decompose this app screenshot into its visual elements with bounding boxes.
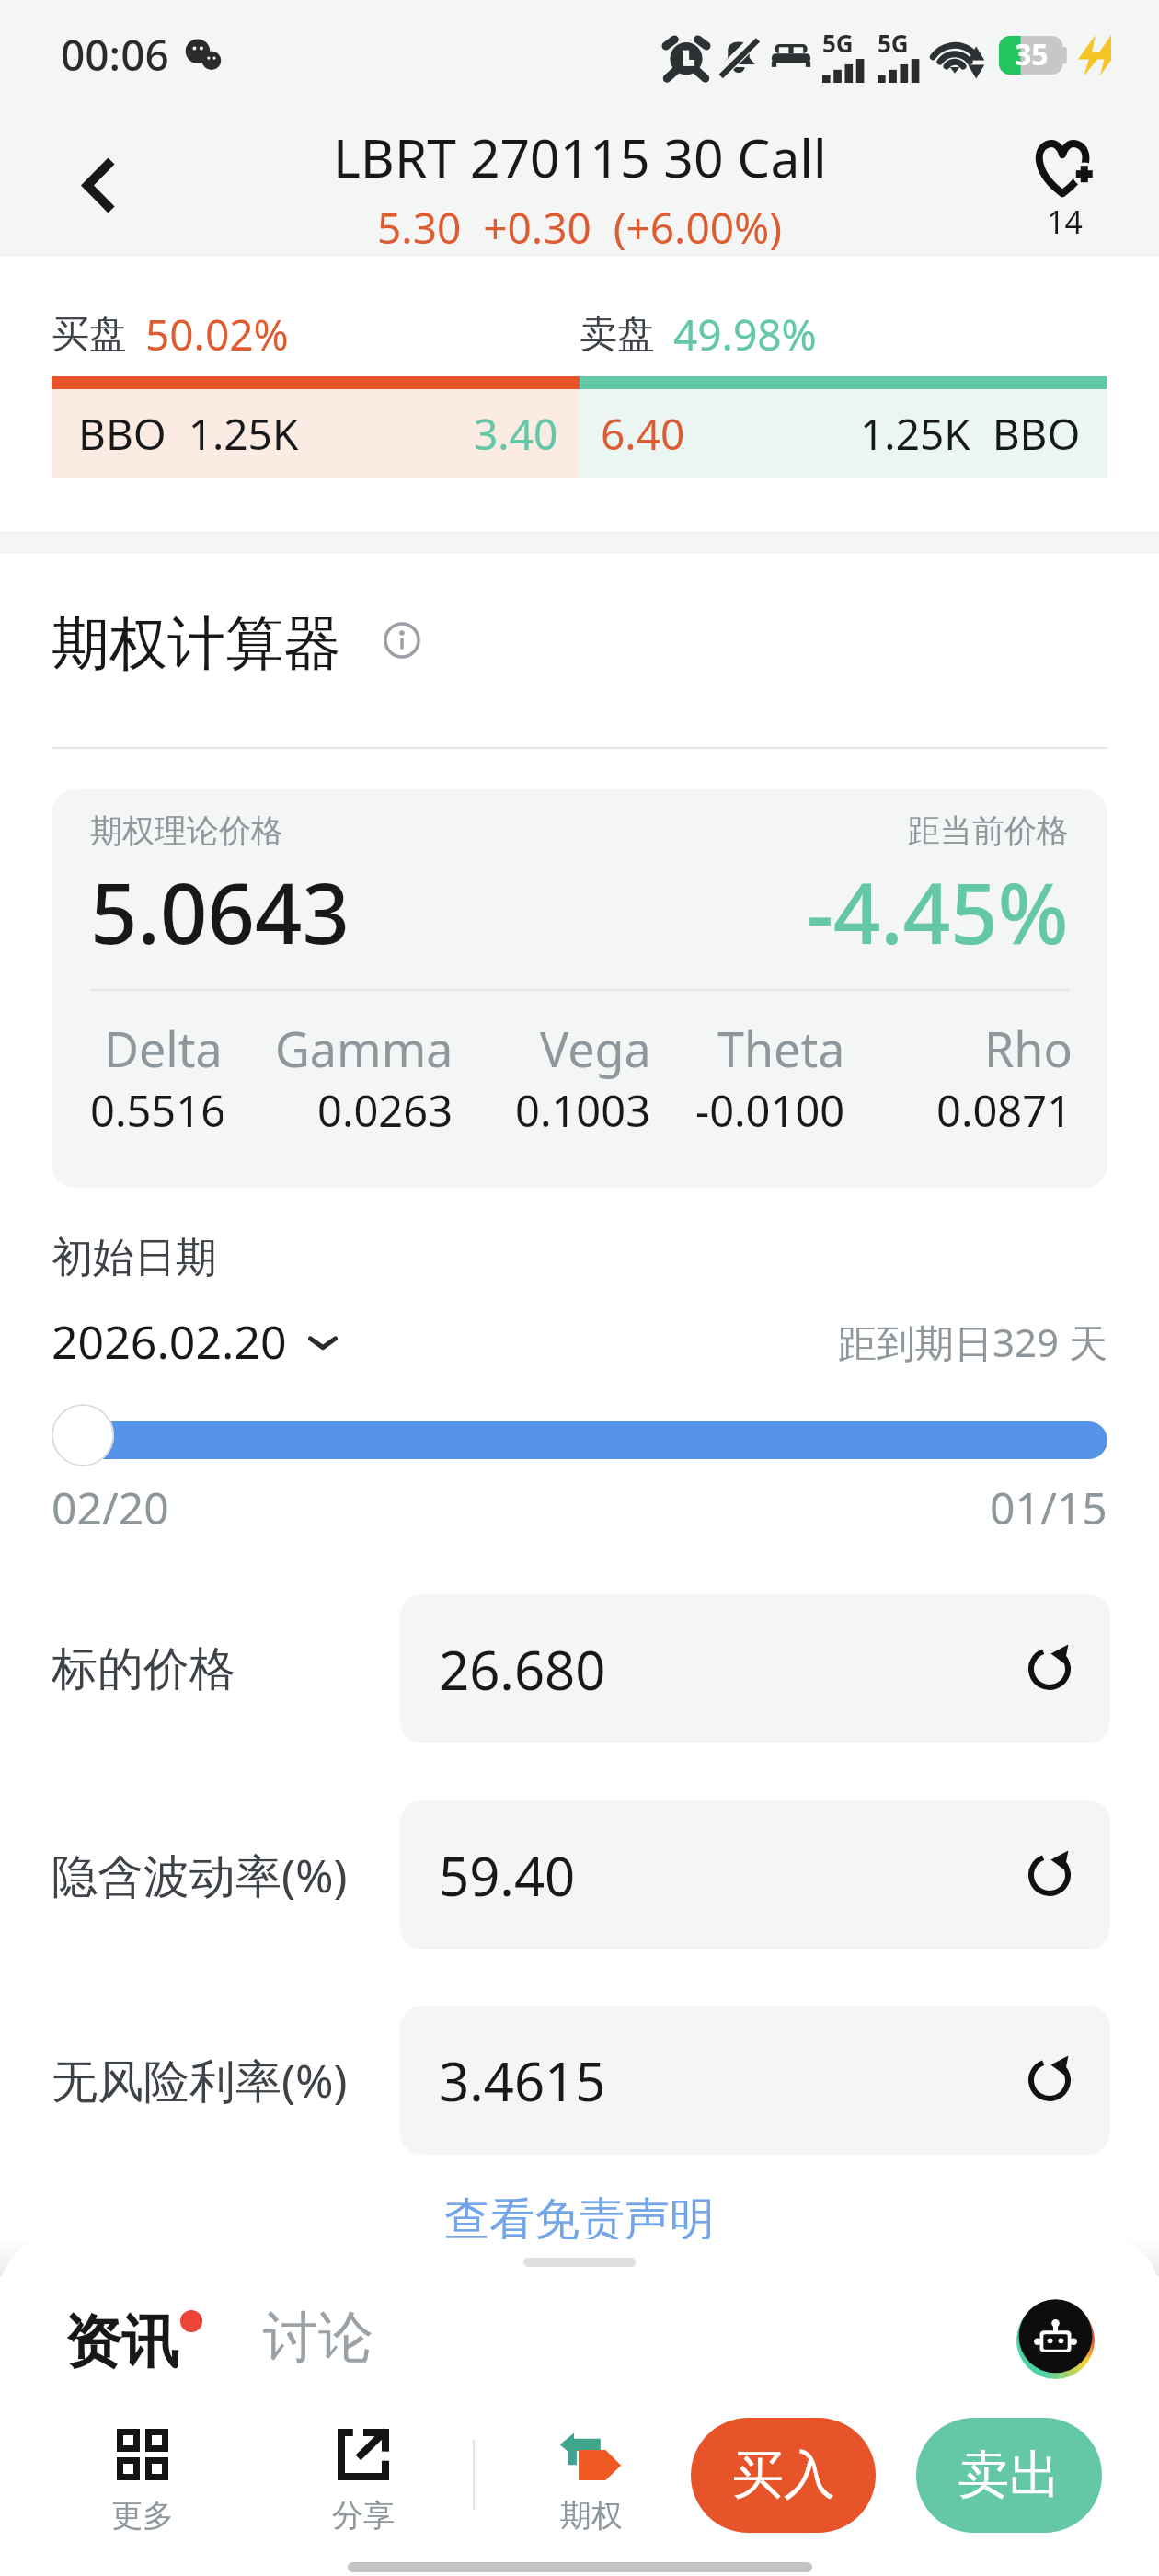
staticText: 买盘 — [52, 311, 127, 359]
staticText: 50.02% — [145, 305, 289, 363]
staticText: -4.45% — [807, 856, 1069, 969]
staticText: BBO 1.25K — [78, 405, 299, 463]
staticText: 0.1003 — [515, 1081, 651, 1140]
staticText: 0.0263 — [317, 1081, 453, 1140]
staticText: 5G — [822, 27, 854, 59]
staticText: 讨论 — [263, 2303, 373, 2373]
staticText: 26.680 — [439, 1633, 606, 1706]
staticText: 卖盘 — [579, 311, 655, 359]
button[interactable]: Add to watchlist — [1004, 140, 1125, 243]
staticText: 隐含波动率(%) — [52, 1844, 400, 1906]
staticText: 1.25K BBO — [860, 405, 1081, 463]
button[interactable]: Reset value — [1016, 2047, 1083, 2113]
staticText: 买入 — [732, 2443, 835, 2508]
button[interactable]: 期权 — [552, 2429, 631, 2536]
staticText: 5.30 +0.30 (+6.00%) — [377, 199, 783, 257]
staticText: 0.0871 — [936, 1081, 1073, 1140]
button[interactable]: 买入 — [691, 2418, 876, 2533]
button[interactable]: 更多 — [103, 2429, 182, 2536]
button[interactable]: 59.40 — [400, 1800, 1110, 1949]
staticText: 35 — [1015, 34, 1049, 75]
staticText: 5.0643 — [90, 856, 350, 969]
staticText: 3.4615 — [439, 2044, 606, 2117]
staticText: Gamma — [275, 1016, 453, 1081]
staticText: 3.40 — [474, 405, 558, 463]
staticText: 14 — [1047, 201, 1083, 243]
staticText: 无风险利率(%) — [52, 2049, 400, 2111]
staticText: LBRT 270115 30 Call — [333, 121, 827, 193]
button[interactable]: Reset value — [1016, 1842, 1083, 1908]
button[interactable]: 期权计算器 — [52, 607, 420, 680]
staticText: 分享 — [332, 2496, 395, 2536]
staticText: 2026.02.20 — [52, 1310, 287, 1373]
staticText: 距到期日329 天 — [838, 1316, 1107, 1368]
staticText: 期权 — [560, 2496, 623, 2536]
button[interactable]: AI assistant — [1016, 2301, 1095, 2379]
staticText: 0.5516 — [90, 1081, 223, 1140]
staticText: 资讯 — [64, 2306, 178, 2378]
staticText: 02/20 — [52, 1478, 169, 1537]
staticText: 49.98% — [673, 305, 817, 363]
button[interactable]: 资讯 — [64, 2306, 178, 2378]
staticText: 期权理论价格 — [90, 811, 283, 851]
staticText: 期权计算器 — [52, 607, 341, 680]
staticText: 卖出 — [958, 2443, 1061, 2508]
button[interactable]: Back — [0, 109, 147, 257]
button[interactable]: 3.4615 — [400, 2006, 1110, 2155]
staticText: 距当前价格 — [908, 811, 1069, 851]
button[interactable]: 分享 — [324, 2429, 403, 2536]
staticText: 01/15 — [990, 1478, 1107, 1537]
staticText: Delta — [104, 1016, 223, 1081]
staticText: 查看免责声明 — [444, 2191, 715, 2248]
staticText: 更多 — [111, 2496, 174, 2536]
button[interactable]: 6.40 — [579, 389, 1107, 478]
staticText: 5G — [878, 27, 909, 59]
button[interactable]: 查看免责声明 — [426, 2188, 733, 2252]
staticText: -0.0100 — [695, 1081, 845, 1140]
button[interactable]: 讨论 — [263, 2306, 373, 2376]
button[interactable]: Date slider — [52, 1404, 114, 1466]
staticText: Rho — [984, 1016, 1073, 1081]
staticText: Vega — [540, 1016, 651, 1081]
button[interactable]: 26.680 — [400, 1594, 1110, 1743]
staticText: 标的价格 — [52, 1640, 400, 1698]
staticText: 6.40 — [601, 405, 685, 463]
button[interactable]: BBO 1.25K — [52, 389, 579, 478]
staticText: Theta — [717, 1016, 845, 1081]
button[interactable]: Reset value — [1016, 1636, 1083, 1702]
staticText: 00:06 — [61, 26, 169, 84]
staticText: 初始日期 — [52, 1232, 217, 1284]
button[interactable]: 卖出 — [916, 2418, 1102, 2533]
staticText: 59.40 — [439, 1839, 576, 1912]
